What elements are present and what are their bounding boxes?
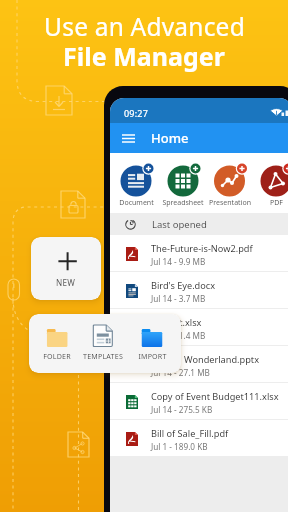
button[interactable]: Document xyxy=(112,198,160,208)
staticText: Bill of Sale_Fill.pdf xyxy=(151,427,229,440)
staticText: The-Future-is-Now2.pdf xyxy=(151,242,253,255)
button[interactable]: Last opened xyxy=(110,213,288,235)
button[interactable]: PDF xyxy=(252,198,288,208)
staticText: FOLDER xyxy=(43,351,71,361)
staticText: Alice in Wonderland.pptx xyxy=(151,353,260,366)
staticText: NEW xyxy=(56,277,76,288)
button[interactable]: Budget.xlsx xyxy=(110,309,288,346)
staticText: Jul 1 - 189.0 KB xyxy=(151,441,208,452)
button[interactable]: TEMPLATES xyxy=(77,317,129,361)
staticText: Jul 14 - 1.4 MB xyxy=(151,330,206,341)
staticText: Copy of Event Budget111.xlsx xyxy=(151,390,279,403)
button[interactable]: The-Future-is-Now2.pdf xyxy=(110,235,288,272)
staticText: Bird's Eye.docx xyxy=(151,279,216,292)
staticText: Presentation xyxy=(209,198,251,208)
button[interactable]: IMPORT xyxy=(126,317,178,361)
staticText: PDF xyxy=(270,198,283,208)
button[interactable]: Open navigation menu xyxy=(122,132,135,145)
other: Wi-Fi and signal status xyxy=(269,108,288,118)
staticText: 09:27 xyxy=(124,107,149,119)
button[interactable]: Presentation xyxy=(206,198,254,208)
button[interactable]: Open navigation menu xyxy=(110,123,288,153)
staticText: Budget.xlsx xyxy=(151,316,202,329)
button[interactable]: Alice in Wonderland.pptx xyxy=(110,346,288,383)
staticText: Use an Advanced xyxy=(44,10,245,43)
staticText: Jul 14 - 275.5 KB xyxy=(151,404,213,415)
staticText: TEMPLATES xyxy=(83,351,123,361)
button[interactable]: Spreadsheet xyxy=(159,198,207,208)
staticText: Last opened xyxy=(152,218,207,231)
button[interactable]: Bill of Sale_Fill.pdf xyxy=(110,420,288,457)
staticText: Jul 14 - 3.7 MB xyxy=(151,293,206,304)
staticText: IMPORT xyxy=(138,351,167,361)
staticText: Jul 14 - 27.1 MB xyxy=(151,367,210,378)
staticText: Spreadsheet xyxy=(162,198,204,208)
staticText: Jul 14 - 9.9 MB xyxy=(151,256,206,267)
staticText: Home xyxy=(151,129,189,147)
staticText: File Manager xyxy=(63,39,225,73)
button[interactable]: Copy of Event Budget111.xlsx xyxy=(110,383,288,420)
button[interactable]: FOLDER xyxy=(31,317,83,361)
button[interactable]: NEW xyxy=(31,237,101,300)
button[interactable]: Bird's Eye.docx xyxy=(110,272,288,309)
staticText: Document xyxy=(119,198,154,208)
